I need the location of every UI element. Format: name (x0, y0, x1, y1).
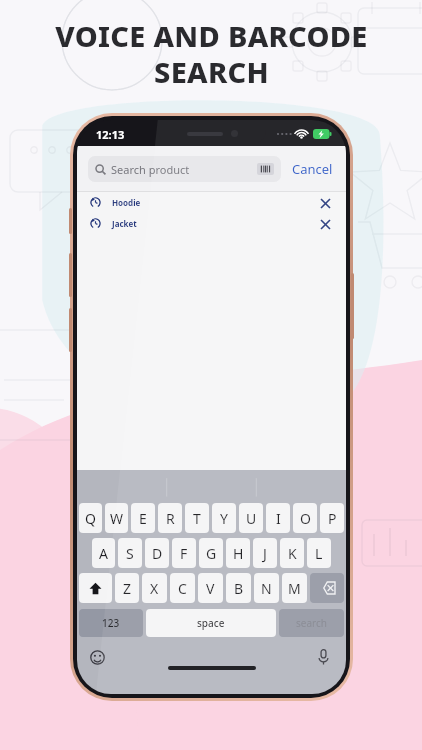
staticText: space (197, 616, 225, 630)
staticText: P (328, 509, 337, 528)
button[interactable]: G (199, 538, 223, 568)
staticText: N (261, 579, 272, 598)
button[interactable]: J (253, 538, 277, 568)
button[interactable]: E (131, 503, 155, 533)
staticText: G (206, 544, 217, 563)
staticText: R (166, 509, 175, 528)
button[interactable]: K (280, 538, 304, 568)
staticText: Y (220, 509, 228, 528)
button[interactable]: Cancel (290, 156, 335, 182)
staticText: Q (85, 509, 96, 528)
staticText: M (288, 579, 301, 598)
button[interactable]: Remove Hoodie (317, 195, 333, 211)
button[interactable]: Search product (88, 156, 281, 182)
button[interactable]: C (170, 573, 195, 603)
button[interactable]: 123 (79, 609, 143, 637)
button[interactable]: A (92, 538, 115, 568)
staticText: H (233, 544, 244, 563)
staticText: S (126, 544, 134, 563)
button[interactable]: space (146, 609, 276, 637)
button[interactable]: Backspace (310, 573, 344, 603)
staticText: Cancel (292, 160, 333, 178)
button[interactable]: U (239, 503, 263, 533)
button[interactable]: T (185, 503, 209, 533)
button[interactable]: H (226, 538, 250, 568)
staticText: Hoodie (112, 197, 141, 208)
staticText: D (152, 544, 163, 563)
staticText: C (178, 579, 187, 598)
staticText: 12:13 (96, 127, 125, 142)
button[interactable]: Y (212, 503, 236, 533)
button[interactable]: Remove Jacket (317, 216, 333, 232)
button[interactable]: O (293, 503, 317, 533)
staticText: F (180, 544, 188, 563)
button[interactable]: P (320, 503, 344, 533)
button[interactable]: X (142, 573, 167, 603)
button[interactable]: V (198, 573, 223, 603)
staticText: A (99, 544, 108, 563)
staticText: E (139, 509, 147, 528)
staticText: 123 (102, 616, 120, 630)
button[interactable]: L (307, 538, 331, 568)
staticText: X (150, 579, 159, 598)
button[interactable]: R (158, 503, 182, 533)
staticText: V (206, 579, 215, 598)
button[interactable]: Hoodie (77, 192, 346, 213)
button[interactable]: Jacket (77, 213, 346, 234)
button[interactable]: W (105, 503, 128, 533)
staticText: Search product (111, 162, 190, 177)
staticText: K (288, 544, 297, 563)
button[interactable]: Emoji (86, 646, 108, 668)
button[interactable]: I (266, 503, 290, 533)
staticText: I (276, 509, 281, 528)
button[interactable]: Q (79, 503, 102, 533)
button[interactable]: F (172, 538, 196, 568)
staticText: T (193, 509, 201, 528)
staticText: J (263, 544, 267, 563)
staticText: O (300, 509, 311, 528)
button[interactable]: Voice input (312, 646, 334, 668)
staticText: search (296, 616, 327, 630)
button[interactable]: B (226, 573, 251, 603)
staticText: Jacket (112, 218, 137, 229)
button[interactable]: Z (115, 573, 139, 603)
staticText: Z (123, 579, 132, 598)
button[interactable]: D (145, 538, 169, 568)
button[interactable]: Shift (79, 573, 112, 603)
button[interactable]: M (282, 573, 307, 603)
staticText: B (234, 579, 244, 598)
button[interactable]: S (118, 538, 142, 568)
button[interactable]: Scan barcode (257, 163, 274, 175)
staticText: U (246, 509, 257, 528)
button[interactable]: N (254, 573, 279, 603)
staticText: VOICE AND BARCODE SEARCH (55, 16, 368, 92)
staticText: L (315, 544, 323, 563)
staticText: W (110, 509, 124, 528)
button[interactable]: search (279, 609, 344, 637)
